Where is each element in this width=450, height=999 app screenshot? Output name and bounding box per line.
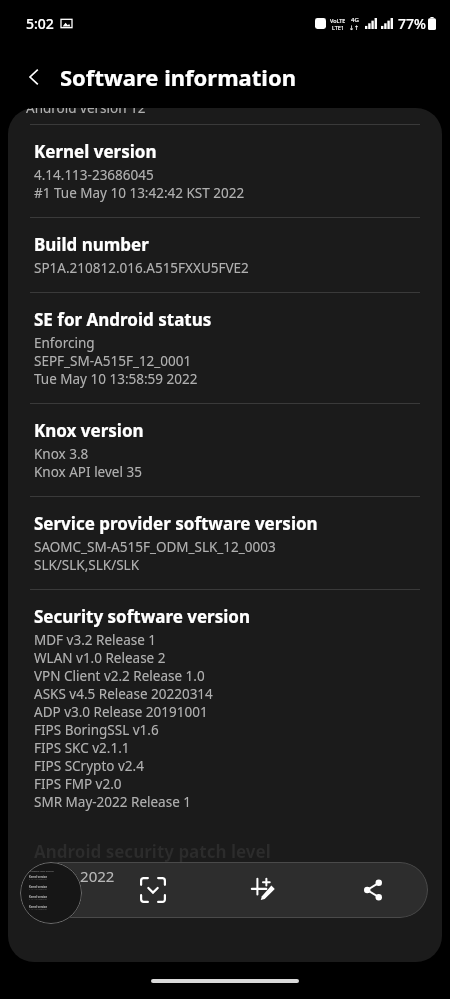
button[interactable]: Android security patch level (8, 826, 442, 886)
staticText: 4.14.113-23686045 (29, 888, 47, 891)
staticText: 4G (351, 16, 359, 24)
staticText: Android version 12 (26, 108, 146, 115)
staticText: SLK/SLK,SLK/SLK (34, 556, 140, 574)
staticText: Kernel version (29, 895, 48, 898)
staticText: SAOMC_SM-A515F_ODM_SLK_12_0003 (34, 538, 276, 556)
staticText: FIPS SKC v2.1.1 (34, 739, 130, 757)
staticText: Android security patch level (34, 840, 271, 863)
staticText: #1 Tue May 10 13:42:42 KST 2022 (34, 184, 245, 202)
staticText: SMR May-2022 Release 1 (34, 793, 192, 811)
button[interactable]: Back (12, 55, 56, 99)
staticText: ASKS v4.5 Release 20220314 (34, 685, 213, 703)
staticText: ADP v3.0 Release 20191001 (34, 703, 208, 721)
staticText: LTE1 (332, 24, 345, 31)
staticText: 4.14.113-23686045 (29, 898, 47, 901)
staticText: Knox 3.8 (34, 445, 89, 463)
staticText: WLAN v1.0 Release 2 (34, 649, 166, 667)
staticText: Kernel version (34, 140, 157, 163)
staticText: ↓↑ (349, 24, 360, 31)
button[interactable]: Service provider software version (8, 497, 442, 589)
staticText: 1 May 2022 (34, 866, 115, 886)
staticText: Knox version (34, 419, 144, 442)
button[interactable]: Crop and edit (208, 862, 318, 918)
staticText: Service provider software version (34, 512, 318, 535)
staticText: FIPS SCrypto v2.4 (34, 757, 144, 775)
staticText: SEPF_SM-A515F_12_0001 (34, 352, 192, 370)
staticText: Kernel version (29, 885, 48, 888)
staticText: Software information (60, 62, 296, 92)
staticText: FIPS FMP v2.0 (34, 775, 122, 793)
button[interactable]: Knox version (8, 404, 442, 496)
staticText: MDF v3.2 Release 1 (34, 631, 157, 649)
staticText: Kernel version (29, 905, 48, 908)
staticText: SP1A.210812.016.A515FXXU5FVE2 (34, 259, 249, 277)
staticText: Software information (29, 869, 54, 872)
staticText: Build number (34, 233, 149, 256)
staticText: FIPS BoringSSL v1.6 (34, 721, 159, 739)
button[interactable]: Build number (8, 218, 442, 292)
button[interactable]: Kernel version (8, 125, 442, 217)
button[interactable]: SE for Android status (8, 293, 442, 403)
staticText: VoLTE (330, 17, 346, 24)
staticText: 5:02 (26, 14, 54, 33)
button[interactable]: Security software version (8, 590, 442, 826)
button[interactable]: Screenshot preview (20, 862, 82, 924)
staticText: 4.14.113-23686045 (29, 908, 47, 911)
staticText: Enforcing (34, 334, 95, 352)
button[interactable]: Share (318, 862, 428, 918)
button[interactable]: Scroll capture (98, 862, 208, 918)
staticText: VPN Client v2.2 Release 1.0 (34, 667, 205, 685)
staticText: 4.14.113-23686045 (34, 166, 154, 184)
staticText: 4.14.113-23686045 (29, 878, 47, 881)
staticText: 77% (398, 14, 426, 33)
staticText: Knox API level 35 (34, 463, 142, 481)
staticText: Kernel version (29, 875, 48, 878)
staticText: SE for Android status (34, 308, 212, 331)
staticText: Security software version (34, 605, 250, 628)
staticText: Tue May 10 13:58:59 2022 (34, 370, 198, 388)
